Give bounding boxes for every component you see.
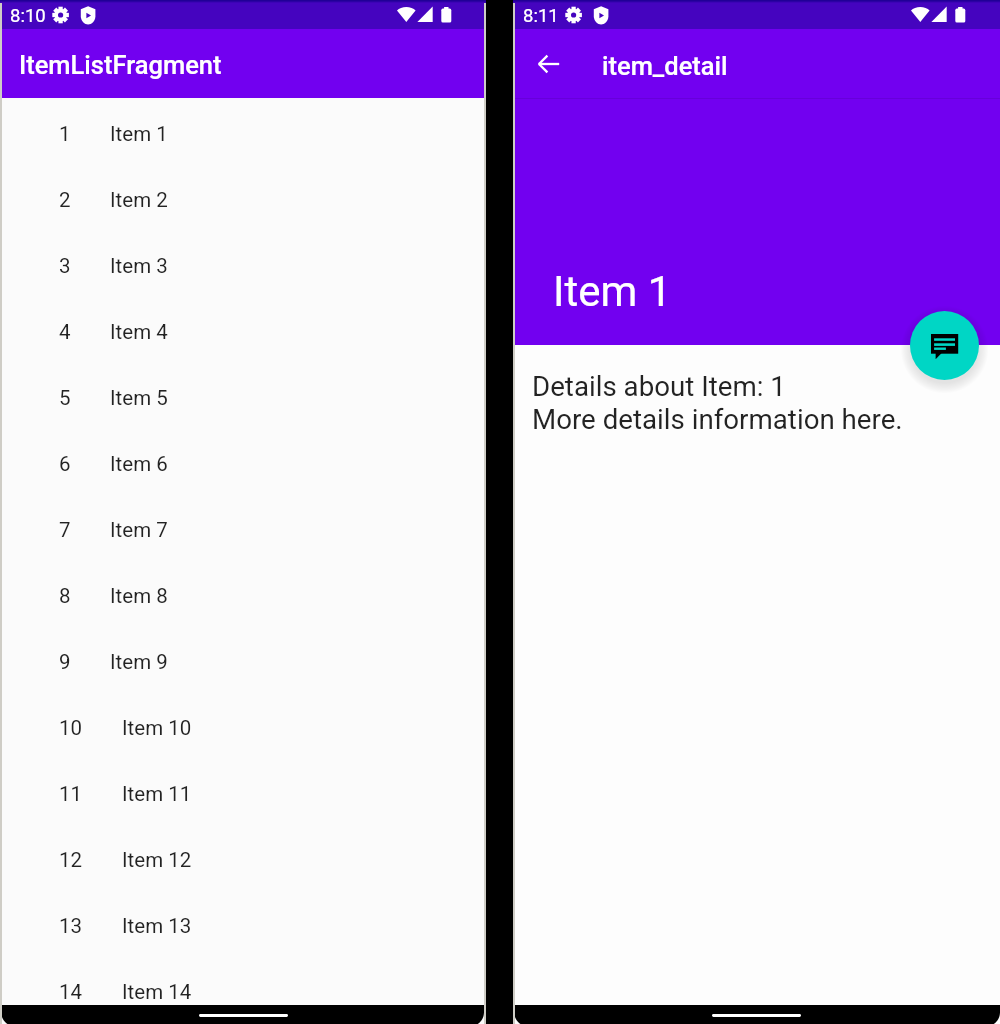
staticText: Details about Item: 1 (532, 370, 786, 402)
staticText: 5 (59, 386, 71, 410)
staticText: 4 (59, 320, 71, 344)
staticText: Item 10 (122, 716, 192, 740)
button[interactable]: 5 (0, 374, 486, 416)
button[interactable]: 12 (0, 836, 486, 878)
staticText: More details information here. (532, 403, 903, 435)
button[interactable]: 11 (0, 770, 486, 812)
staticText: 9 (59, 650, 71, 674)
staticText: Item 3 (110, 254, 168, 278)
staticText: Item 4 (110, 320, 168, 344)
staticText: 3 (59, 254, 71, 278)
staticText: 11 (59, 782, 83, 806)
button[interactable]: 2 (0, 176, 486, 218)
staticText: 14 (59, 980, 83, 1004)
staticText: Item 6 (110, 452, 168, 476)
button[interactable]: 8 (0, 572, 486, 614)
staticText: 12 (59, 848, 83, 872)
staticText: Item 13 (122, 914, 192, 938)
button[interactable]: 6 (0, 440, 486, 482)
staticText: Item 11 (122, 782, 192, 806)
staticText: Item 2 (110, 188, 168, 212)
staticText: 13 (59, 914, 83, 938)
button[interactable]: 9 (0, 638, 486, 680)
staticText: 8:11 (523, 5, 559, 27)
staticText: Item 14 (122, 980, 192, 1004)
staticText: 6 (59, 452, 71, 476)
staticText: Item 1 (110, 122, 168, 146)
button[interactable]: 1 (0, 110, 486, 152)
staticText: 8:10 (10, 5, 46, 27)
button[interactable]: 7 (0, 506, 486, 548)
button[interactable]: Message (910, 311, 979, 380)
staticText: Item 12 (122, 848, 192, 872)
staticText: Item 1 (553, 267, 672, 316)
button[interactable]: 14 (0, 968, 486, 1010)
button[interactable]: 10 (0, 704, 486, 746)
staticText: Item 5 (110, 386, 168, 410)
button[interactable]: 13 (0, 902, 486, 944)
staticText: Item 9 (110, 650, 168, 674)
staticText: Item 7 (110, 518, 168, 542)
button[interactable]: Navigate up (525, 40, 573, 88)
staticText: 8 (59, 584, 71, 608)
staticText: 7 (59, 518, 71, 542)
staticText: ItemListFragment (19, 50, 222, 80)
staticText: 2 (59, 188, 71, 212)
button[interactable]: 3 (0, 242, 486, 284)
staticText: Item 8 (110, 584, 168, 608)
button[interactable]: 4 (0, 308, 486, 350)
staticText: 10 (59, 716, 83, 740)
button[interactable]: ItemListFragment (0, 29, 486, 98)
staticText: item_detail (602, 51, 728, 81)
staticText: 1 (59, 122, 71, 146)
